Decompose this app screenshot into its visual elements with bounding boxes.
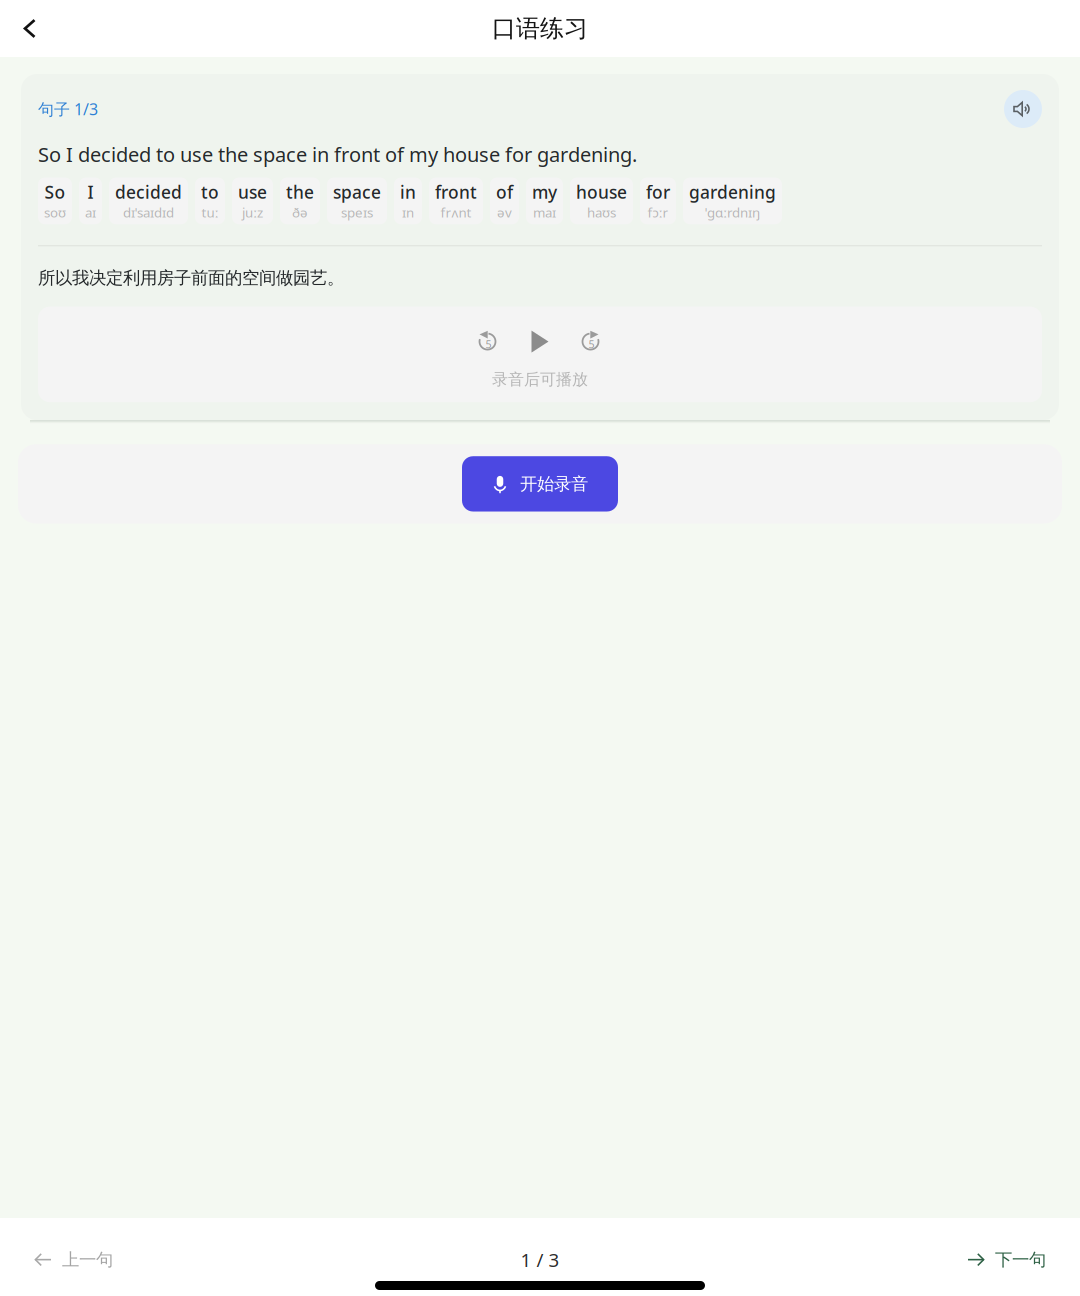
staticText: gardening: [689, 181, 776, 204]
staticText: decided: [115, 181, 182, 204]
staticText: ˈɡɑːrdnɪŋ: [705, 204, 760, 221]
button[interactable]: 开始录音: [462, 456, 618, 511]
button[interactable]: Play sentence audio: [1004, 90, 1042, 128]
staticText: 开始录音: [520, 473, 588, 494]
staticText: ðə: [292, 204, 308, 221]
button[interactable]: Play recording: [528, 330, 551, 354]
staticText: of: [496, 181, 513, 204]
button[interactable]: 上一句: [2, 1237, 145, 1282]
staticText: 句子 1/3: [38, 98, 98, 120]
staticText: fɔːr: [647, 204, 668, 221]
staticText: use: [238, 181, 267, 204]
staticText: juːz: [242, 204, 263, 221]
staticText: soʊ: [44, 204, 66, 221]
button[interactable]: Forward 5 seconds: [579, 330, 603, 354]
staticText: frʌnt: [440, 204, 471, 221]
button[interactable]: Rewind 5 seconds: [476, 330, 500, 354]
staticText: əv: [497, 204, 512, 221]
staticText: So: [44, 181, 65, 204]
staticText: to: [201, 181, 219, 204]
staticText: house: [576, 181, 627, 204]
staticText: 上一句: [62, 1249, 113, 1270]
staticText: 下一句: [995, 1249, 1046, 1270]
staticText: tuː: [201, 204, 218, 221]
staticText: speɪs: [341, 204, 373, 221]
staticText: dɪˈsaɪdɪd: [123, 204, 174, 221]
staticText: aɪ: [85, 204, 96, 221]
staticText: 口语练习: [492, 14, 588, 43]
staticText: the: [286, 181, 314, 204]
staticText: 所以我决定利用房子前面的空间做园艺。: [38, 267, 344, 289]
staticText: ɪn: [402, 204, 414, 221]
staticText: So I decided to use the space in front o…: [38, 141, 637, 168]
staticText: haʊs: [587, 204, 616, 221]
staticText: for: [646, 181, 670, 204]
button[interactable]: Back: [0, 0, 54, 56]
button[interactable]: 下一句: [935, 1237, 1078, 1282]
staticText: in: [400, 181, 416, 204]
staticText: 1 / 3: [520, 1247, 559, 1272]
staticText: 录音后可播放: [492, 370, 588, 389]
staticText: maɪ: [533, 204, 556, 221]
staticText: space: [333, 181, 381, 204]
staticText: 5: [485, 337, 491, 351]
staticText: I: [87, 181, 93, 204]
staticText: front: [435, 181, 477, 204]
staticText: my: [532, 181, 557, 204]
staticText: 5: [588, 337, 594, 351]
